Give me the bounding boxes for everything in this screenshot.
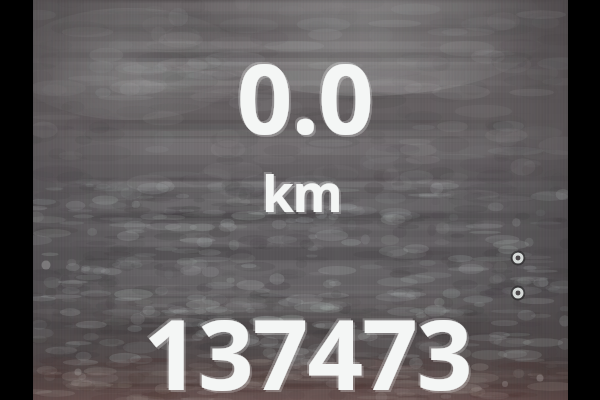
button[interactable]: Vehicle odometer display [0,0,600,400]
